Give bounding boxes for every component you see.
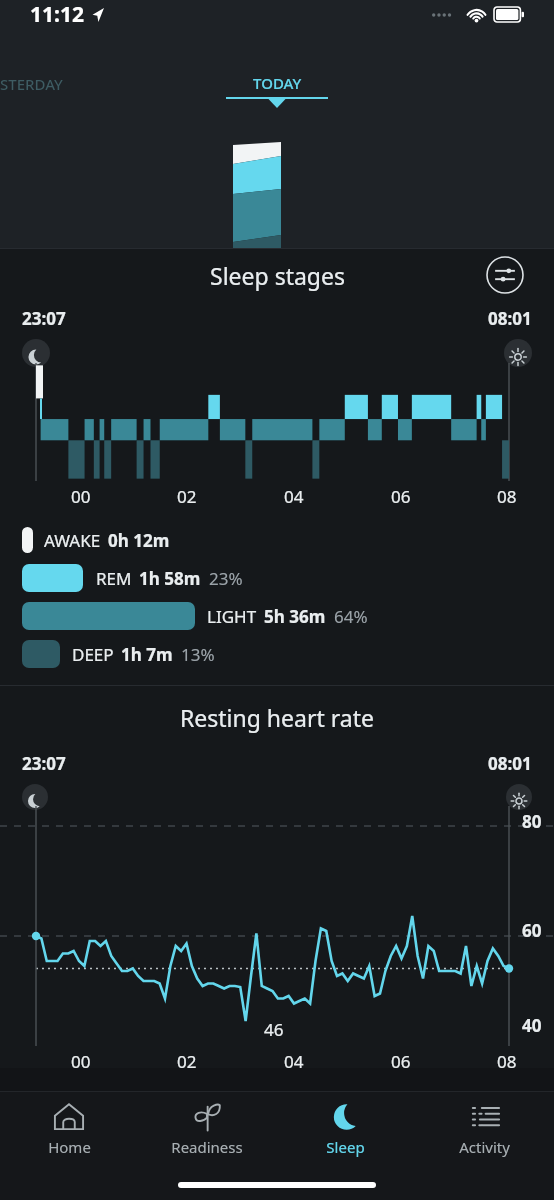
staticText: 00	[71, 1050, 91, 1072]
staticText: 06	[391, 1050, 411, 1072]
staticText: LIGHT	[207, 605, 257, 628]
staticText: 08:01	[488, 307, 532, 330]
staticText: AWAKE	[44, 529, 101, 552]
staticText: 00	[71, 485, 91, 508]
staticText: REM	[96, 567, 132, 590]
button[interactable]: LIGHT	[22, 599, 368, 633]
button[interactable]: Readiness	[138, 1092, 276, 1170]
staticText: 02	[177, 1050, 197, 1072]
staticText: Activity	[459, 1137, 510, 1157]
staticText: 5h 36m	[264, 605, 326, 628]
staticText: 1h 7m	[121, 643, 173, 666]
button[interactable]: AWAKE	[22, 523, 170, 557]
staticText: Sleep	[326, 1137, 365, 1157]
button[interactable]: TODAY	[212, 62, 342, 110]
staticText: Sleep stages	[210, 260, 345, 291]
button[interactable]: DEEP	[22, 637, 215, 671]
staticText: 04	[284, 1050, 304, 1072]
staticText: 04	[284, 485, 304, 508]
staticText: 02	[177, 485, 197, 508]
button[interactable]: Sleep	[276, 1092, 415, 1170]
button[interactable]: Home	[0, 1092, 138, 1170]
staticText: 1h 58m	[139, 567, 201, 590]
staticText: 06	[391, 485, 411, 508]
staticText: 0h 12m	[108, 529, 170, 552]
staticText: 46	[264, 1018, 284, 1041]
staticText: DEEP	[72, 643, 114, 666]
staticText: Resting heart rate	[180, 702, 374, 733]
button[interactable]: Sleep stage settings	[486, 256, 524, 294]
staticText: 23:07	[22, 307, 66, 330]
staticText: 08:01	[488, 752, 532, 775]
staticText: 08	[497, 1050, 517, 1072]
button[interactable]: REM	[22, 561, 243, 595]
staticText: 80	[522, 810, 542, 833]
staticText: 23:07	[22, 752, 66, 775]
staticText: 23%	[209, 567, 243, 590]
button[interactable]: Activity	[415, 1092, 554, 1170]
staticText: Readiness	[171, 1137, 243, 1157]
staticText: 40	[522, 1014, 542, 1037]
staticText: 64%	[334, 605, 368, 628]
staticText: STERDAY	[0, 74, 63, 94]
staticText: TODAY	[253, 73, 302, 93]
staticText: 60	[522, 919, 542, 942]
staticText: 08	[497, 485, 517, 508]
staticText: Home	[48, 1137, 91, 1157]
staticText: 13%	[181, 643, 215, 666]
staticText: 11:12	[30, 0, 84, 29]
